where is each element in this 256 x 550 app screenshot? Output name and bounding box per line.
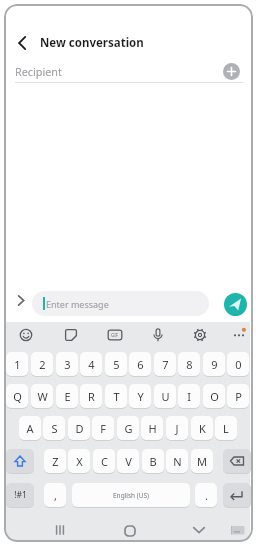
- staticText: Recipient: [15, 64, 62, 79]
- button[interactable]: W: [31, 384, 53, 408]
- button[interactable]: [223, 483, 251, 507]
- button[interactable]: 4: [80, 352, 102, 376]
- button[interactable]: [13, 34, 31, 52]
- staticText: O: [210, 389, 219, 404]
- staticText: D: [75, 421, 84, 436]
- button[interactable]: P: [227, 384, 249, 408]
- button[interactable]: F: [92, 416, 114, 440]
- button[interactable]: S: [43, 416, 65, 440]
- button[interactable]: D: [68, 416, 90, 440]
- button[interactable]: B: [142, 449, 164, 473]
- button[interactable]: 2: [31, 352, 53, 376]
- button[interactable]: [51, 521, 69, 539]
- staticText: 7: [162, 357, 169, 372]
- staticText: H: [148, 421, 157, 436]
- staticText: Z: [52, 454, 59, 469]
- button[interactable]: Y: [129, 384, 151, 408]
- staticText: S: [51, 421, 58, 436]
- button[interactable]: 7: [154, 352, 176, 376]
- button[interactable]: 6: [129, 352, 151, 376]
- button[interactable]: [190, 521, 208, 539]
- staticText: G: [124, 421, 133, 436]
- staticText: New conversation: [40, 35, 144, 51]
- button[interactable]: G: [117, 416, 139, 440]
- button[interactable]: [17, 326, 35, 344]
- button[interactable]: V: [117, 449, 139, 473]
- button[interactable]: [230, 326, 248, 344]
- staticText: T: [113, 389, 120, 404]
- staticText: Y: [137, 389, 144, 404]
- staticText: A: [26, 421, 34, 436]
- button[interactable]: [15, 294, 27, 307]
- button[interactable]: !#1: [6, 483, 34, 507]
- staticText: 3: [64, 357, 71, 372]
- button[interactable]: [121, 522, 139, 540]
- button[interactable]: [223, 63, 240, 80]
- button[interactable]: 3: [56, 352, 78, 376]
- button[interactable]: 8: [178, 352, 200, 376]
- button[interactable]: C: [93, 449, 115, 473]
- staticText: N: [173, 454, 182, 469]
- staticText: 1: [14, 357, 21, 372]
- button[interactable]: GIF: [106, 326, 124, 344]
- staticText: L: [223, 421, 229, 436]
- button[interactable]: 0: [227, 352, 249, 376]
- staticText: U: [161, 389, 170, 404]
- staticText: .: [205, 488, 208, 503]
- staticText: B: [149, 454, 157, 469]
- staticText: C: [101, 454, 108, 469]
- staticText: M: [197, 454, 207, 469]
- button[interactable]: L: [215, 416, 237, 440]
- staticText: K: [199, 421, 206, 436]
- staticText: Q: [13, 389, 22, 404]
- staticText: Enter message: [46, 298, 109, 310]
- button[interactable]: A: [19, 416, 41, 440]
- staticText: F: [100, 421, 106, 436]
- staticText: 0: [235, 357, 242, 372]
- staticText: 6: [137, 357, 144, 372]
- staticText: English (US): [113, 491, 150, 500]
- button[interactable]: [62, 326, 80, 344]
- staticText: 5: [113, 357, 120, 372]
- staticText: E: [64, 389, 71, 404]
- button[interactable]: N: [166, 449, 188, 473]
- staticText: 8: [186, 357, 193, 372]
- button[interactable]: [229, 522, 247, 538]
- button[interactable]: 5: [105, 352, 127, 376]
- button[interactable]: K: [191, 416, 213, 440]
- button[interactable]: O: [203, 384, 225, 408]
- button[interactable]: U: [154, 384, 176, 408]
- button[interactable]: [191, 326, 209, 344]
- button[interactable]: 1: [6, 352, 28, 376]
- button[interactable]: [149, 326, 167, 344]
- button[interactable]: H: [141, 416, 163, 440]
- staticText: J: [175, 421, 179, 436]
- button[interactable]: J: [166, 416, 188, 440]
- staticText: V: [125, 454, 132, 469]
- staticText: P: [235, 389, 242, 404]
- button[interactable]: I: [178, 384, 200, 408]
- button[interactable]: Z: [44, 449, 66, 473]
- button[interactable]: [224, 293, 247, 316]
- staticText: ,: [54, 488, 57, 503]
- button[interactable]: X: [68, 449, 90, 473]
- button[interactable]: 9: [203, 352, 225, 376]
- staticText: GIF: [111, 332, 119, 338]
- button[interactable]: Q: [6, 384, 28, 408]
- button[interactable]: M: [191, 449, 213, 473]
- staticText: X: [76, 454, 83, 469]
- staticText: R: [88, 389, 95, 404]
- button[interactable]: Enter message: [32, 291, 209, 316]
- staticText: 2: [39, 357, 46, 372]
- button[interactable]: R: [80, 384, 102, 408]
- button[interactable]: English (US): [72, 483, 190, 507]
- staticText: !#1: [14, 489, 27, 501]
- button[interactable]: E: [56, 384, 78, 408]
- button[interactable]: .: [195, 483, 217, 507]
- button[interactable]: T: [105, 384, 127, 408]
- button[interactable]: [223, 449, 251, 473]
- staticText: 9: [211, 357, 218, 372]
- staticText: 4: [88, 357, 95, 372]
- button[interactable]: [6, 449, 34, 473]
- button[interactable]: ,: [44, 483, 66, 507]
